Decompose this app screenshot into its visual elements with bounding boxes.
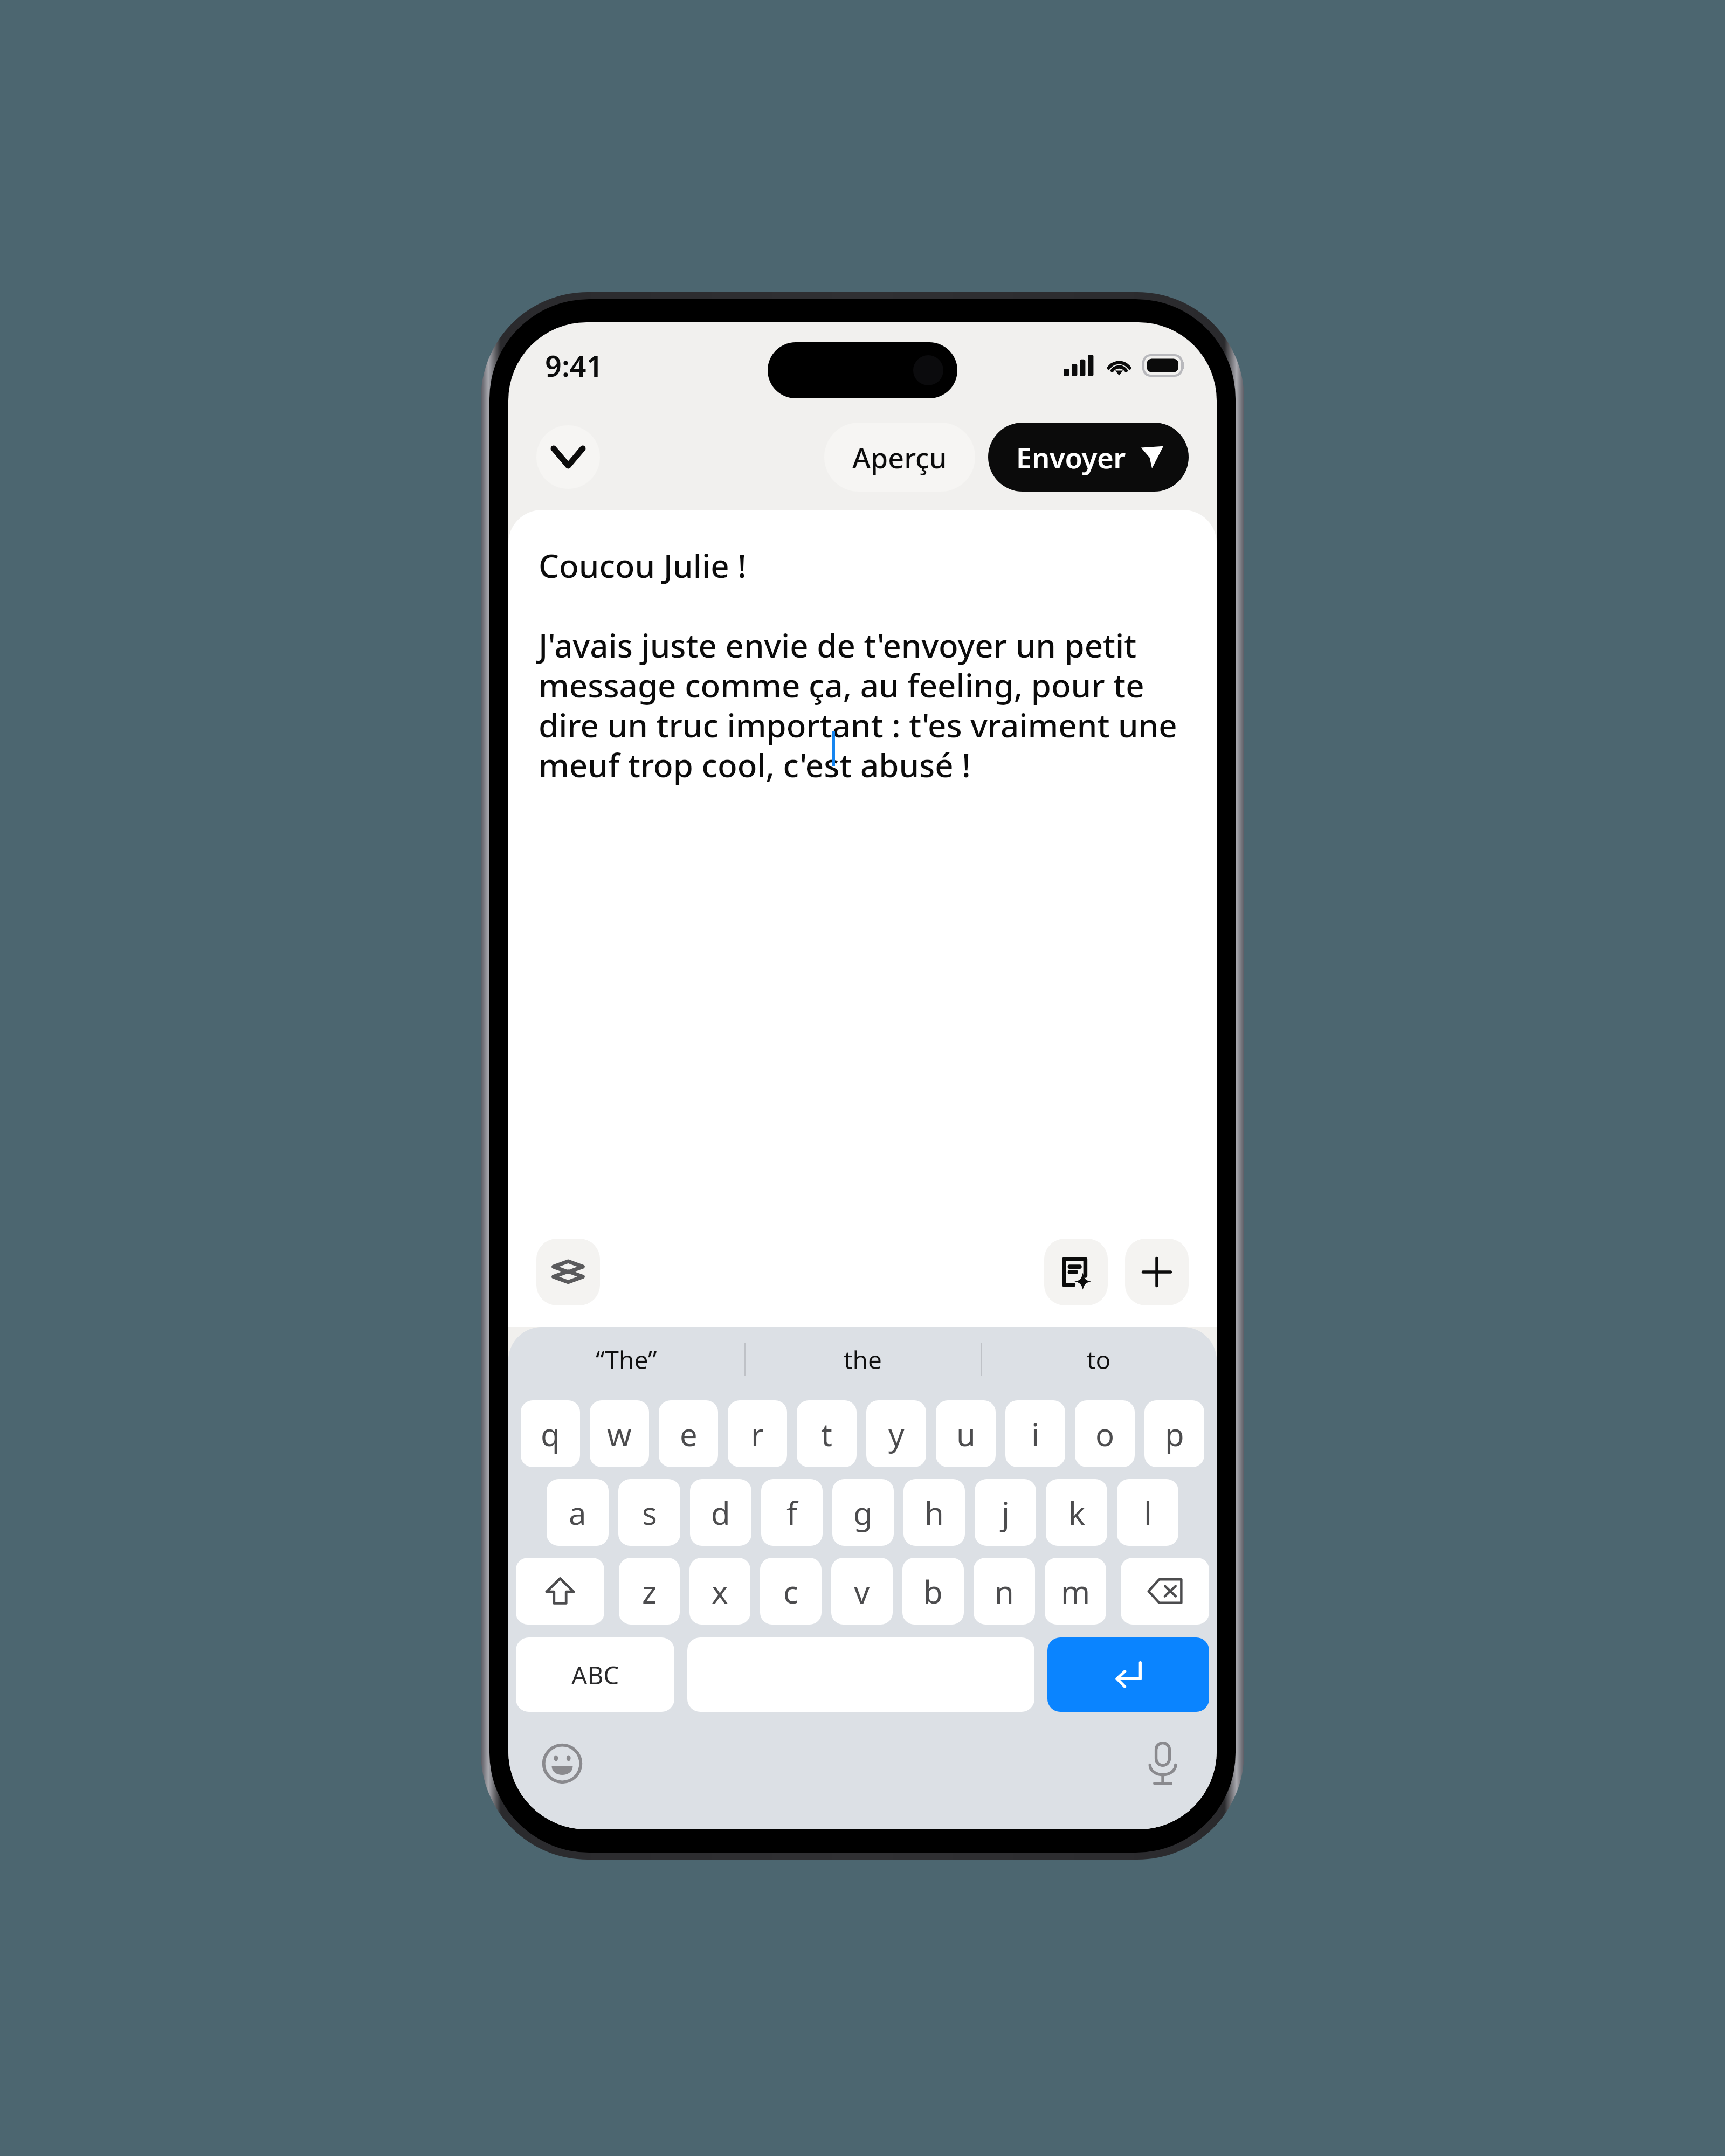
staticText: Coucou Julie ! (539, 543, 747, 588)
button[interactable]: Entrée (1047, 1637, 1209, 1712)
staticText: p (1165, 1413, 1184, 1455)
staticText: x (712, 1570, 728, 1613)
button[interactable]: x (689, 1558, 750, 1625)
button[interactable]: to (981, 1327, 1217, 1392)
button[interactable]: Espace (687, 1637, 1034, 1712)
staticText: v (854, 1570, 870, 1613)
staticText: y (888, 1413, 905, 1455)
staticText: t (821, 1413, 832, 1455)
button[interactable]: q (521, 1400, 580, 1467)
button[interactable]: m (1045, 1558, 1106, 1625)
staticText: w (607, 1413, 632, 1455)
staticText: d (711, 1491, 730, 1534)
staticText: u (956, 1413, 976, 1455)
staticText: m (1061, 1570, 1091, 1613)
button[interactable]: Dictée (1138, 1739, 1188, 1788)
button[interactable]: a (547, 1479, 609, 1546)
staticText: s (642, 1491, 657, 1534)
staticText: e (680, 1413, 698, 1455)
button[interactable]: Ajouter (1125, 1239, 1189, 1305)
button[interactable]: Aperçu (824, 423, 975, 492)
staticText: to (1087, 1343, 1111, 1377)
button[interactable]: s (618, 1479, 680, 1546)
staticText: q (541, 1413, 560, 1455)
staticText: c (783, 1570, 798, 1613)
staticText: “The” (596, 1343, 657, 1377)
button[interactable]: l (1117, 1479, 1178, 1546)
button[interactable]: i (1005, 1400, 1065, 1467)
button[interactable]: the (744, 1327, 981, 1392)
staticText: o (1095, 1413, 1115, 1455)
staticText: a (569, 1491, 586, 1534)
button[interactable]: Emoji (537, 1739, 587, 1788)
button[interactable]: c (760, 1558, 822, 1625)
staticText: ABC (571, 1658, 619, 1692)
button[interactable]: ABC (516, 1637, 674, 1712)
staticText: Envoyer (1016, 438, 1126, 476)
button[interactable]: w (590, 1400, 649, 1467)
staticText: i (1031, 1413, 1039, 1455)
button[interactable]: e (659, 1400, 718, 1467)
staticText: 9:41 (545, 345, 603, 385)
staticText: h (924, 1491, 944, 1534)
staticText: k (1068, 1491, 1085, 1534)
staticText: n (995, 1570, 1014, 1613)
button[interactable]: p (1144, 1400, 1204, 1467)
staticText: b (923, 1570, 943, 1613)
button[interactable]: v (831, 1558, 893, 1625)
staticText: Aperçu (852, 438, 947, 476)
button[interactable]: g (832, 1479, 894, 1546)
button[interactable]: Envoyer (988, 423, 1189, 492)
button[interactable]: k (1046, 1479, 1107, 1546)
button[interactable]: b (902, 1558, 964, 1625)
button[interactable]: u (936, 1400, 996, 1467)
button[interactable]: n (974, 1558, 1035, 1625)
button[interactable]: d (690, 1479, 751, 1546)
button[interactable]: t (797, 1400, 857, 1467)
button[interactable]: “The” (508, 1327, 744, 1392)
staticText: J'avais juste envie de t'envoyer un peti… (539, 623, 1191, 787)
staticText: f (786, 1491, 797, 1534)
button[interactable]: z (619, 1558, 680, 1625)
staticText: r (751, 1413, 764, 1455)
button[interactable]: y (866, 1400, 926, 1467)
button[interactable]: h (903, 1479, 965, 1546)
button[interactable]: Modèle IA (1044, 1239, 1108, 1305)
staticText: the (844, 1343, 882, 1377)
button[interactable]: Majuscule (516, 1558, 604, 1625)
button[interactable]: Supprimer (1121, 1558, 1209, 1625)
staticText: z (642, 1570, 657, 1613)
staticText: j (1002, 1491, 1010, 1534)
button[interactable]: Calques (536, 1239, 600, 1305)
staticText: g (853, 1491, 873, 1534)
button[interactable]: Réduire (536, 425, 600, 489)
staticText: l (1144, 1491, 1152, 1534)
button[interactable]: r (728, 1400, 787, 1467)
button[interactable]: j (975, 1479, 1036, 1546)
button[interactable]: o (1075, 1400, 1135, 1467)
button[interactable]: f (761, 1479, 823, 1546)
